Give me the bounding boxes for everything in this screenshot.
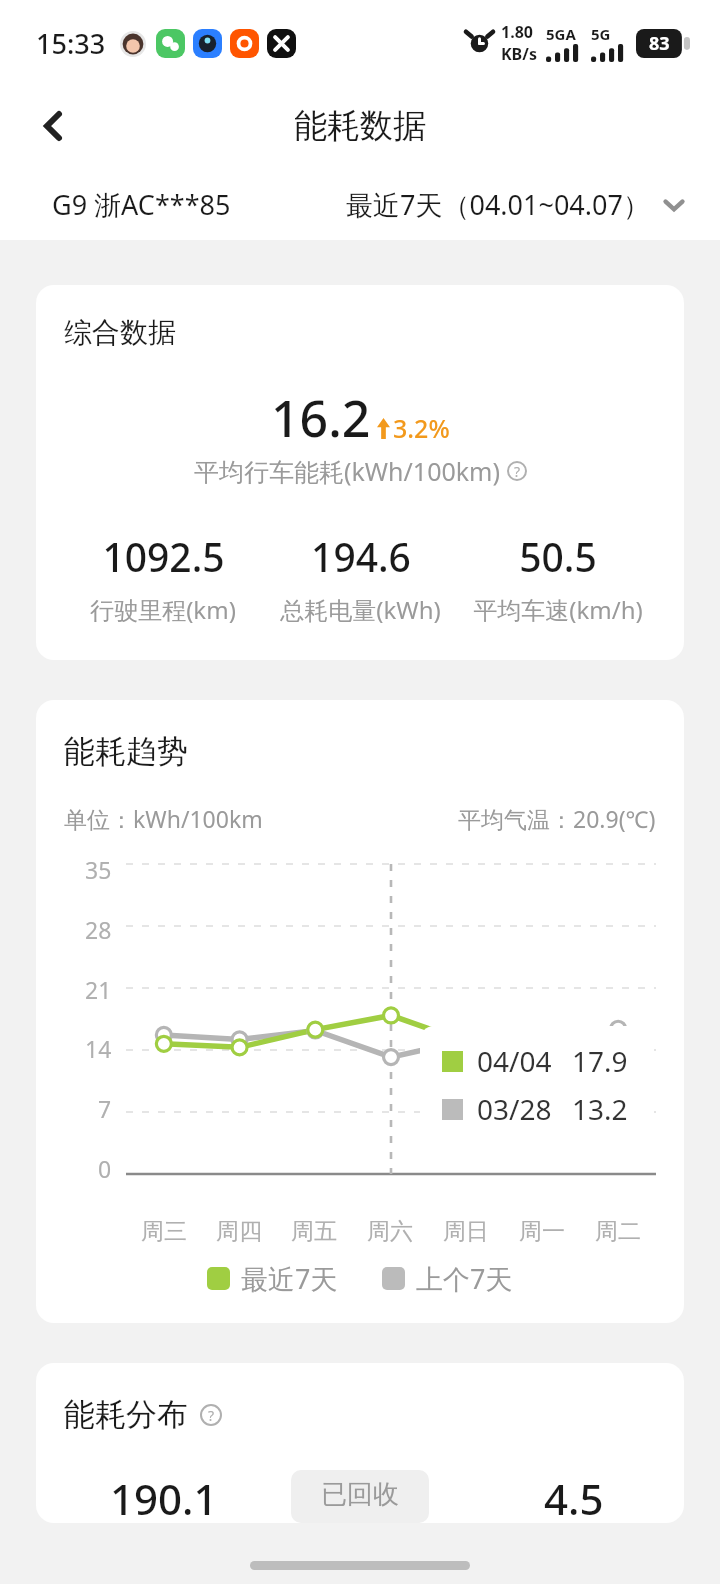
staticText: 28	[85, 914, 112, 945]
button[interactable]: 已回收	[291, 1470, 429, 1523]
button[interactable]: 综合数据	[36, 285, 684, 660]
staticText: 周一	[519, 1217, 565, 1246]
button[interactable]: 194.6	[262, 530, 459, 626]
staticText: 13.2	[572, 1090, 628, 1128]
staticText: 1092.5	[102, 530, 225, 583]
staticText: 04/04	[477, 1042, 552, 1080]
staticText: 能耗趋势	[64, 732, 188, 771]
staticText: 平均气温：20.9(℃)	[458, 803, 656, 834]
staticText: 7	[98, 1093, 112, 1124]
staticText: 平均车速(km/h)	[473, 593, 643, 626]
staticText: 周三	[141, 1217, 187, 1246]
staticText: 5G	[591, 24, 611, 44]
staticText: 能耗分布	[64, 1395, 188, 1434]
staticText: 单位：kWh/100km	[64, 803, 263, 834]
staticText: 194.6	[311, 530, 411, 583]
staticText: 周日	[443, 1217, 489, 1246]
staticText: 最近7天（04.01~04.07）	[346, 186, 650, 223]
button[interactable]: 最近7天	[207, 1260, 338, 1297]
staticText: 周五	[291, 1217, 337, 1246]
staticText: 14	[85, 1033, 112, 1064]
staticText: ?	[208, 1406, 215, 1425]
button[interactable]: 能耗分布	[36, 1363, 684, 1523]
staticText: 21	[85, 974, 112, 1005]
staticText: 已回收	[321, 1478, 399, 1511]
staticText: 上个7天	[416, 1260, 513, 1297]
staticText: 15:33	[36, 25, 106, 62]
staticText: 能耗数据	[294, 105, 426, 147]
staticText: 3.2%	[393, 411, 450, 445]
staticText: 综合数据	[64, 315, 176, 350]
staticText: KB/s	[501, 43, 537, 65]
staticText: 周二	[595, 1217, 641, 1246]
staticText: 最近7天	[241, 1260, 338, 1297]
staticText: 17.9	[572, 1042, 628, 1080]
staticText: ?	[514, 462, 521, 481]
staticText: 16.2	[271, 384, 371, 452]
staticText: 总耗电量(kWh)	[280, 593, 441, 626]
button[interactable]: 能耗趋势	[36, 700, 684, 1323]
button[interactable]: 最近7天（04.01~04.07）	[346, 186, 686, 223]
button[interactable]: Back	[22, 95, 84, 157]
staticText: 4.5	[544, 1470, 604, 1523]
button[interactable]: 上个7天	[382, 1260, 513, 1297]
staticText: 50.5	[519, 530, 597, 583]
staticText: 周六	[367, 1217, 413, 1246]
staticText: 1.80	[501, 21, 533, 43]
staticText: 190.1	[110, 1470, 218, 1523]
button[interactable]: G9 浙AC***85	[52, 186, 231, 223]
staticText: 03/28	[477, 1090, 552, 1128]
staticText: 0	[98, 1153, 112, 1184]
button[interactable]: 50.5	[459, 530, 656, 626]
button[interactable]: 04/04	[420, 1026, 650, 1144]
staticText: 行驶里程(km)	[90, 593, 236, 626]
staticText: 周四	[216, 1217, 262, 1246]
staticText: 35	[85, 854, 112, 885]
button[interactable]: 1092.5	[64, 530, 262, 626]
staticText: 平均行车能耗(kWh/100km)	[194, 454, 500, 488]
staticText: 5GA	[546, 24, 576, 44]
staticText: 83	[649, 31, 670, 56]
